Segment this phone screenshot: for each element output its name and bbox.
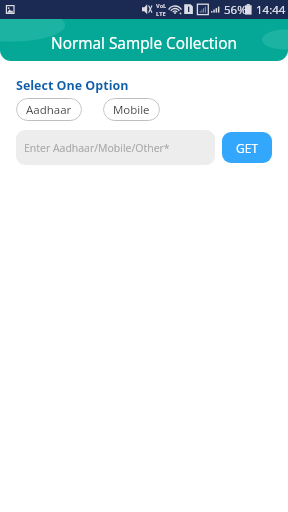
staticText: GET bbox=[236, 140, 259, 156]
staticText: Mobile bbox=[113, 102, 150, 118]
button[interactable]: Enter Aadhaar/Mobile/Other* bbox=[16, 130, 215, 165]
staticText: 14:44 bbox=[256, 2, 286, 18]
staticText: Aadhaar bbox=[26, 102, 72, 118]
staticText: Select One Option bbox=[16, 77, 129, 94]
staticText: Normal Sample Collection bbox=[51, 33, 237, 54]
button[interactable]: GET bbox=[222, 132, 272, 163]
staticText: VoL bbox=[156, 2, 167, 10]
button[interactable]: Mobile bbox=[103, 98, 160, 121]
staticText: LTE bbox=[156, 10, 166, 18]
button[interactable]: Aadhaar bbox=[16, 98, 82, 121]
staticText: Enter Aadhaar/Mobile/Other* bbox=[24, 141, 170, 155]
staticText: 56% bbox=[224, 2, 247, 18]
